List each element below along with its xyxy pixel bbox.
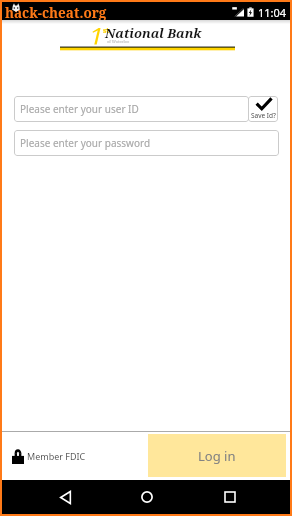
- staticText: Please enter your password: [20, 136, 151, 150]
- other: Battery: [247, 5, 254, 17]
- staticText: Log in: [198, 447, 236, 465]
- staticText: hack-cheat.org: [5, 4, 107, 22]
- button[interactable]: Member FDIC: [2, 432, 150, 480]
- staticText: Please enter your user ID: [20, 102, 139, 116]
- button[interactable]: Back: [43, 482, 87, 512]
- staticText: Save Id?: [251, 111, 276, 120]
- button[interactable]: Recents: [208, 482, 252, 512]
- staticText: st: [103, 26, 110, 36]
- button[interactable]: Please enter your user ID: [14, 96, 249, 122]
- button[interactable]: Home: [125, 482, 169, 512]
- button[interactable]: Log in: [148, 434, 286, 477]
- staticText: of Waterloo: [107, 39, 130, 44]
- button[interactable]: Save Id: [248, 96, 278, 122]
- staticText: 11:04: [258, 5, 287, 20]
- button[interactable]: Please enter your password: [14, 130, 279, 156]
- staticText: Member FDIC: [27, 450, 86, 462]
- other: Signal strength: [230, 5, 244, 17]
- staticText: National Bank: [105, 24, 202, 42]
